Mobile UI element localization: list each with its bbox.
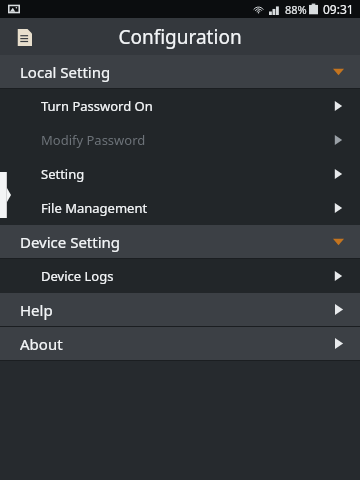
button[interactable]: Help (0, 293, 360, 326)
button[interactable]: Device Logs (0, 259, 360, 293)
staticText: File Management (41, 199, 148, 217)
button[interactable]: Setting (0, 157, 360, 191)
staticText: About (20, 334, 63, 354)
staticText: Device Logs (41, 267, 114, 285)
staticText: Help (20, 300, 53, 320)
staticText: Setting (41, 165, 85, 183)
button[interactable]: Configuration file (9, 22, 39, 52)
button[interactable]: Device Setting (0, 225, 360, 258)
staticText: Modify Password (41, 131, 146, 149)
staticText: Local Setting (20, 62, 111, 82)
staticText: Device Setting (20, 232, 121, 252)
button[interactable]: Turn Password On (0, 89, 360, 123)
staticText: Configuration (118, 24, 242, 50)
button[interactable]: Modify Password (0, 123, 360, 157)
staticText: 09:31 (323, 1, 354, 17)
button[interactable]: File Management (0, 191, 360, 225)
staticText: Turn Password On (41, 97, 153, 115)
button[interactable]: Local Setting (0, 55, 360, 88)
button[interactable]: Open navigation drawer (0, 172, 11, 218)
staticText: 88% (285, 2, 307, 17)
button[interactable]: About (0, 327, 360, 360)
